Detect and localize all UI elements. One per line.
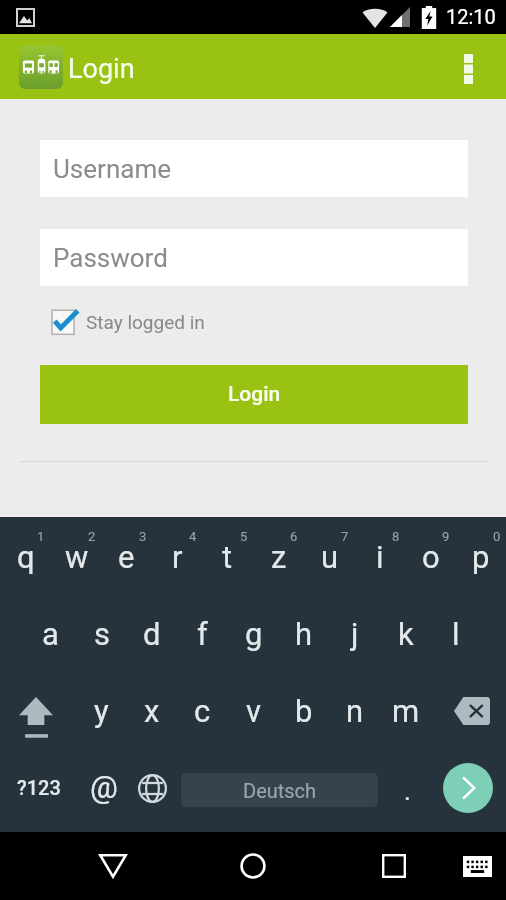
staticText: 3	[139, 529, 147, 544]
staticText: k	[398, 616, 414, 652]
button[interactable]: More options	[444, 34, 506, 99]
button[interactable]: r	[152, 521, 203, 593]
staticText: 1	[37, 529, 45, 544]
button[interactable]: ?123	[0, 751, 78, 823]
staticText: g	[245, 616, 263, 652]
staticText: e	[118, 539, 135, 575]
staticText: m	[392, 693, 420, 729]
button[interactable]: g	[228, 598, 279, 670]
button[interactable]: m	[380, 675, 431, 747]
button[interactable]: n	[329, 675, 380, 747]
button[interactable]: a	[25, 598, 76, 670]
staticText: v	[246, 693, 262, 729]
staticText: 6	[290, 529, 298, 544]
staticText: o	[422, 539, 440, 575]
staticText: x	[144, 693, 160, 729]
staticText: Password	[53, 243, 168, 273]
staticText: n	[346, 693, 364, 729]
button[interactable]: .	[383, 755, 431, 827]
staticText: s	[94, 616, 110, 652]
staticText: z	[271, 539, 287, 575]
button[interactable]: Recent apps	[360, 832, 428, 900]
staticText: l	[452, 616, 460, 652]
button[interactable]: Back	[79, 832, 147, 900]
staticText: .	[404, 776, 411, 806]
button[interactable]: l	[430, 598, 481, 670]
button[interactable]: s	[76, 598, 127, 670]
staticText: 8	[392, 529, 400, 544]
staticText: ?123	[17, 776, 61, 799]
button[interactable]: Change language	[128, 752, 176, 824]
staticText: 7	[341, 529, 349, 544]
button[interactable]: b	[278, 675, 329, 747]
button[interactable]: h	[278, 598, 329, 670]
button[interactable]: z	[253, 521, 304, 593]
staticText: Login	[228, 382, 281, 407]
button[interactable]: Deutsch	[181, 773, 378, 807]
button[interactable]: w	[51, 521, 102, 593]
button[interactable]: Stay logged in	[52, 307, 205, 337]
button[interactable]: f	[177, 598, 228, 670]
staticText: j	[351, 616, 359, 652]
button[interactable]: Enter	[443, 763, 493, 813]
staticText: Stay logged in	[86, 311, 205, 333]
staticText: t	[222, 539, 233, 575]
button[interactable]: p	[455, 521, 506, 593]
button[interactable]: Username	[40, 140, 468, 197]
button[interactable]: y	[76, 675, 127, 747]
button[interactable]: t	[202, 521, 253, 593]
staticText: 5	[240, 529, 248, 544]
staticText: 9	[442, 529, 450, 544]
staticText: p	[472, 539, 490, 575]
button[interactable]: App logo	[19, 45, 63, 89]
staticText: r	[172, 539, 183, 575]
button[interactable]: Login	[40, 365, 468, 424]
button[interactable]: Shift	[0, 675, 70, 747]
staticText: 2	[88, 529, 96, 544]
staticText: q	[17, 539, 35, 575]
staticText: Login	[68, 53, 135, 85]
button[interactable]: q	[0, 521, 51, 593]
staticText: w	[65, 539, 89, 575]
staticText: 0	[493, 529, 501, 544]
staticText: y	[94, 693, 109, 729]
staticText: Username	[53, 154, 171, 184]
staticText: @	[90, 769, 118, 805]
staticText: d	[143, 616, 161, 652]
staticText: c	[194, 693, 211, 729]
button[interactable]: Home	[219, 832, 287, 900]
staticText: 12:10	[446, 5, 496, 28]
button[interactable]: o	[405, 521, 456, 593]
button[interactable]: d	[126, 598, 177, 670]
staticText: f	[197, 616, 208, 652]
staticText: 4	[189, 529, 197, 544]
button[interactable]: x	[126, 675, 177, 747]
button[interactable]: v	[228, 675, 279, 747]
button[interactable]: Hide keyboard	[448, 832, 506, 900]
staticText: i	[376, 539, 384, 575]
button[interactable]: j	[329, 598, 380, 670]
button[interactable]: Password	[40, 229, 468, 286]
button[interactable]: c	[177, 675, 228, 747]
button[interactable]: k	[380, 598, 431, 670]
staticText: h	[295, 616, 313, 652]
button[interactable]: @	[80, 751, 128, 823]
staticText: b	[295, 693, 313, 729]
staticText: a	[42, 616, 59, 652]
button[interactable]: Backspace	[440, 675, 506, 747]
button[interactable]: e	[101, 521, 152, 593]
button[interactable]: i	[354, 521, 405, 593]
staticText: u	[321, 539, 339, 575]
staticText: Deutsch	[243, 779, 317, 802]
button[interactable]: u	[304, 521, 355, 593]
